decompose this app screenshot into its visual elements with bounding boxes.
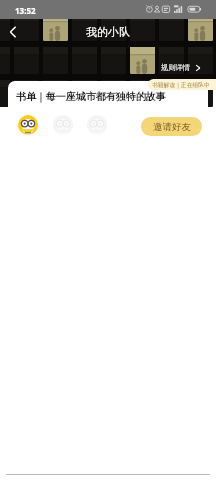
button[interactable]: Back — [0, 19, 26, 45]
staticText: 邀请好友 — [153, 121, 191, 133]
staticText: 规则详情 — [161, 63, 190, 72]
staticText: 书籍解读｜正在组队中 — [152, 81, 210, 88]
staticText: 13:52 — [15, 5, 36, 16]
staticText: 书单｜每一座城市都有独特的故事 — [16, 90, 166, 103]
staticText: 我的小队 — [86, 25, 130, 39]
button[interactable]: 邀请好友 — [141, 117, 202, 136]
button[interactable]: 规则详情 — [161, 60, 202, 75]
